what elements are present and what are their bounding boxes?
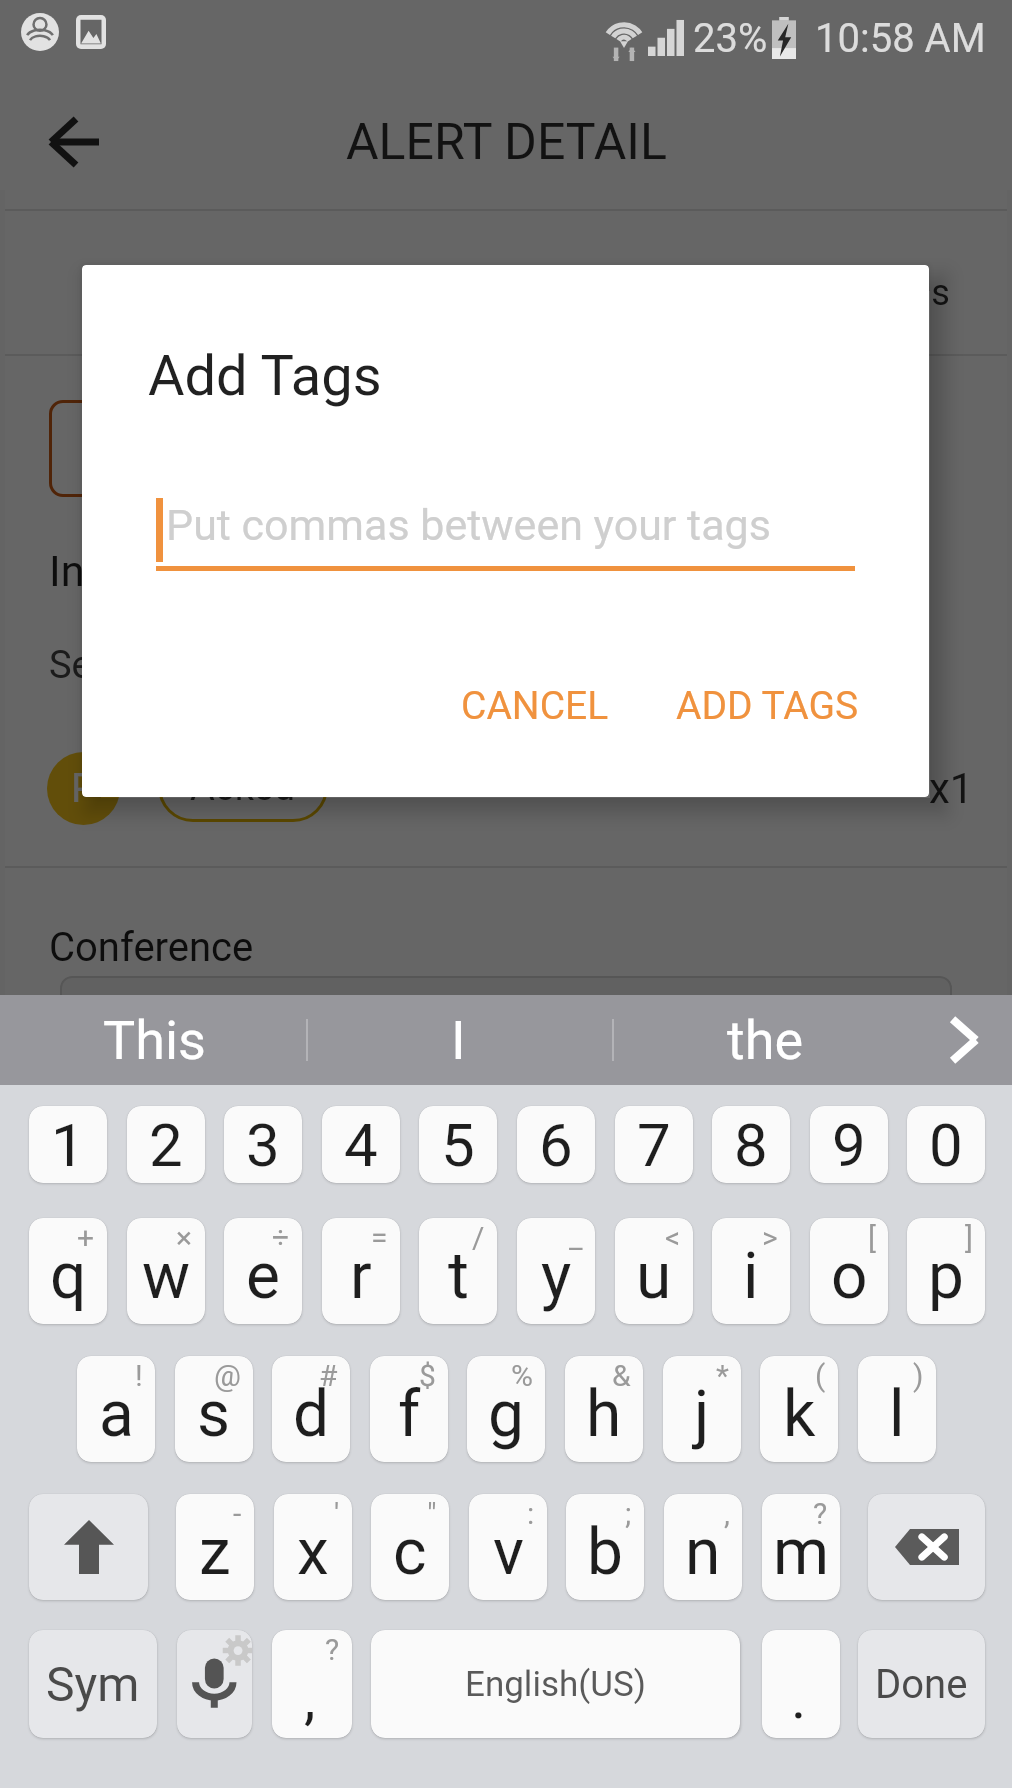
button[interactable]: ) [858, 1356, 936, 1462]
button[interactable]: . [762, 1630, 840, 1738]
button[interactable]: " [371, 1494, 449, 1600]
button[interactable]: Put commas between your tags [156, 493, 855, 571]
button[interactable]: @ [175, 1356, 253, 1462]
button[interactable]: P [47, 752, 120, 825]
staticText: CANCEL [461, 683, 609, 729]
button[interactable]: + [29, 1218, 107, 1324]
button[interactable]: : [469, 1494, 547, 1600]
button[interactable]: 8 [712, 1106, 790, 1183]
button[interactable]: CANCEL [437, 661, 633, 751]
button[interactable]: < [615, 1218, 693, 1324]
button[interactable]: & [565, 1356, 643, 1462]
button[interactable]: Sym [29, 1630, 157, 1738]
staticText: the [727, 1009, 804, 1072]
staticText: ( [815, 1358, 826, 1393]
staticText: v [493, 1515, 524, 1590]
button[interactable]: ! [77, 1356, 155, 1462]
staticText: 7 [637, 1110, 671, 1180]
staticText: i [743, 1239, 759, 1314]
staticText: Service: Monitoring [49, 643, 375, 688]
button[interactable]: 0 [907, 1106, 985, 1183]
staticText: ! [135, 1358, 143, 1393]
button[interactable]: / [419, 1218, 497, 1324]
staticText: m [773, 1515, 830, 1590]
button[interactable]: More suggestions [916, 995, 1012, 1085]
button[interactable]: This [14, 995, 294, 1085]
staticText: × [176, 1220, 193, 1255]
staticText: Sym [46, 1656, 140, 1712]
staticText: 4 [344, 1110, 378, 1180]
button[interactable]: 5 [419, 1106, 497, 1183]
button[interactable]: ADD TAGS [652, 661, 883, 751]
button[interactable]: Back [34, 102, 114, 182]
staticText: t [448, 1239, 469, 1314]
staticText: < [665, 1220, 681, 1255]
staticText: r [350, 1239, 372, 1314]
staticText: P [71, 765, 97, 812]
button[interactable]: OPEN [49, 400, 285, 497]
button[interactable]: 9 [810, 1106, 888, 1183]
button[interactable]: - [176, 1494, 254, 1600]
button[interactable]: 4 [322, 1106, 400, 1183]
button[interactable]: $ [370, 1356, 448, 1462]
staticText: @ [214, 1358, 241, 1393]
staticText: & [612, 1358, 631, 1393]
staticText: Tags [872, 272, 950, 314]
button[interactable]: > [712, 1218, 790, 1324]
button[interactable]: # [272, 1356, 350, 1462]
button[interactable]: Voice input [177, 1630, 252, 1738]
staticText: * [716, 1358, 729, 1393]
button[interactable]: ' [274, 1494, 352, 1600]
button[interactable]: * [663, 1356, 741, 1462]
button[interactable]: 2 [127, 1106, 205, 1183]
staticText: 0 [929, 1110, 963, 1180]
staticText: ? [325, 1632, 340, 1667]
staticText: / [472, 1220, 485, 1255]
button[interactable]: ÷ [224, 1218, 302, 1324]
button[interactable]: I [318, 995, 598, 1085]
staticText: c [393, 1515, 427, 1590]
staticText: ? [813, 1496, 828, 1531]
button[interactable]: 7 [615, 1106, 693, 1183]
staticText: # [319, 1358, 338, 1393]
button[interactable]: % [467, 1356, 545, 1462]
staticText: [ [868, 1220, 876, 1255]
staticText: $ [419, 1358, 436, 1393]
button[interactable]: 3 [224, 1106, 302, 1183]
button[interactable]: 1 [29, 1106, 107, 1183]
button[interactable]: ] [907, 1218, 985, 1324]
staticText: e [246, 1239, 280, 1314]
button[interactable]: ? [272, 1630, 352, 1738]
staticText: - [233, 1496, 242, 1531]
button[interactable]: the [625, 995, 905, 1085]
button[interactable]: _ [517, 1218, 595, 1324]
button[interactable]: English(US) [371, 1630, 740, 1738]
staticText: ALERT DETAIL [346, 113, 667, 172]
staticText: q [50, 1239, 87, 1314]
button[interactable]: Shift [29, 1494, 148, 1600]
staticText: s [197, 1377, 231, 1452]
staticText: _ [569, 1220, 583, 1255]
button[interactable]: [ [810, 1218, 888, 1324]
staticText: z [199, 1515, 231, 1590]
staticText: d [293, 1377, 330, 1452]
staticText: : [527, 1496, 535, 1531]
button[interactable]: Acked [158, 752, 328, 822]
button[interactable]: Backspace [868, 1494, 985, 1600]
button[interactable]: = [322, 1218, 400, 1324]
button[interactable]: ? [762, 1494, 840, 1600]
button[interactable]: 6 [517, 1106, 595, 1183]
button[interactable]: ; [566, 1494, 644, 1600]
button[interactable]: Done [858, 1630, 985, 1738]
staticText: Acked [190, 765, 296, 810]
button[interactable]: , [664, 1494, 742, 1600]
staticText: " [427, 1496, 437, 1531]
staticText: o [831, 1239, 868, 1314]
staticText: 5 [441, 1110, 475, 1180]
button[interactable]: ( [760, 1356, 838, 1462]
staticText: x [297, 1515, 329, 1590]
staticText: j [694, 1377, 710, 1452]
button[interactable]: × [127, 1218, 205, 1324]
staticText: = [371, 1220, 388, 1255]
staticText: + [77, 1220, 95, 1255]
